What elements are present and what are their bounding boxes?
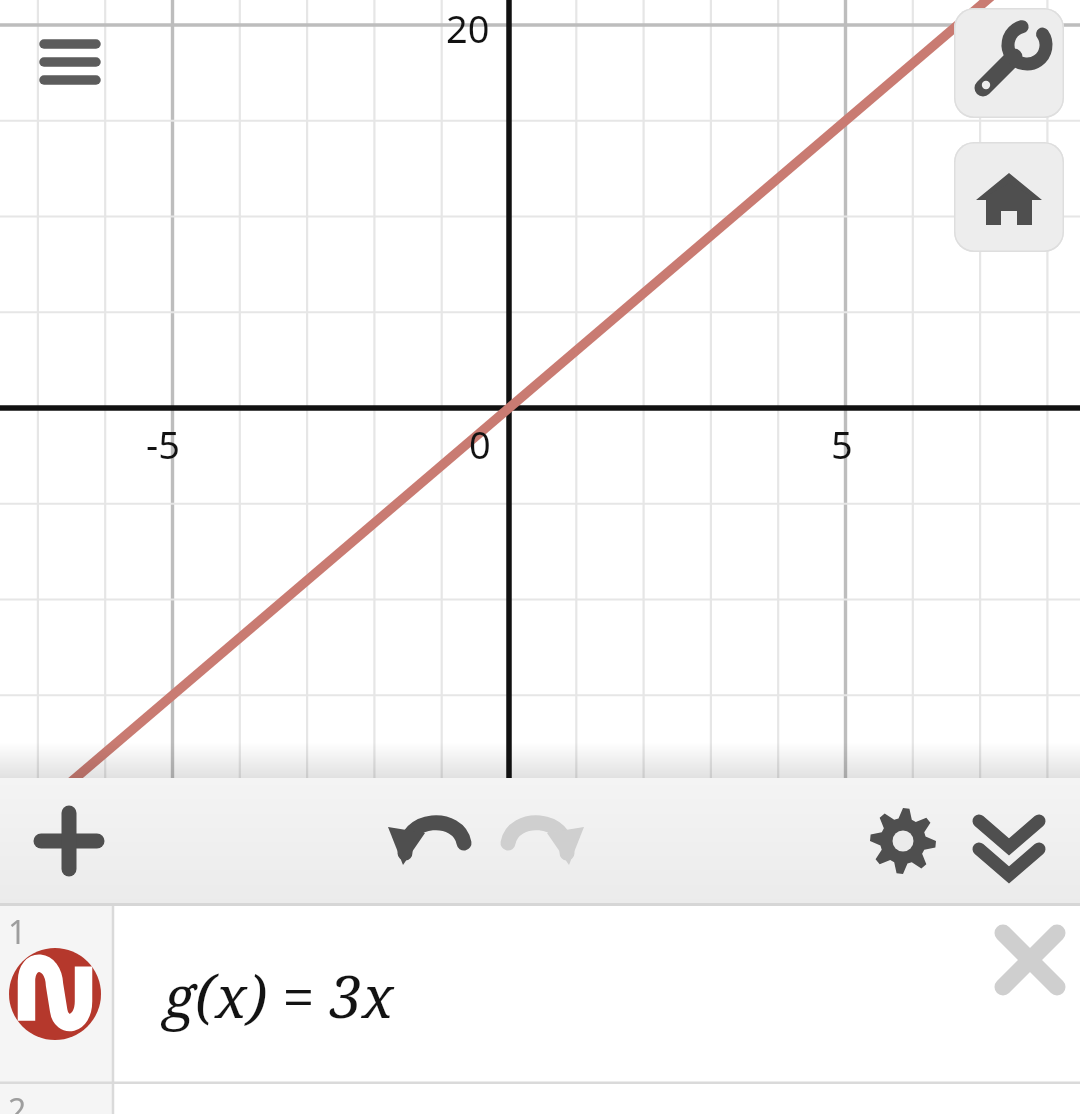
staticText: 2: [8, 1088, 27, 1114]
button[interactable]: Delete expression: [985, 915, 1075, 1005]
staticText: 20: [446, 2, 490, 54]
button[interactable]: Home view: [954, 142, 1064, 252]
staticText: g(x) = 3x: [163, 956, 394, 1035]
button[interactable]: Settings: [857, 795, 949, 887]
button[interactable]: Add expression: [23, 795, 115, 887]
button[interactable]: Graph settings: [954, 8, 1064, 118]
staticText: -5: [146, 418, 180, 470]
staticText: 5: [831, 418, 853, 470]
button[interactable]: Redo: [495, 795, 587, 887]
staticText: 0: [469, 418, 491, 470]
staticText: 1: [8, 910, 27, 954]
button[interactable]: 1: [0, 906, 1080, 1084]
button[interactable]: Menu: [38, 36, 102, 94]
button[interactable]: Undo: [385, 795, 477, 887]
button[interactable]: Collapse: [963, 795, 1055, 887]
button[interactable]: 2: [0, 1084, 1080, 1114]
